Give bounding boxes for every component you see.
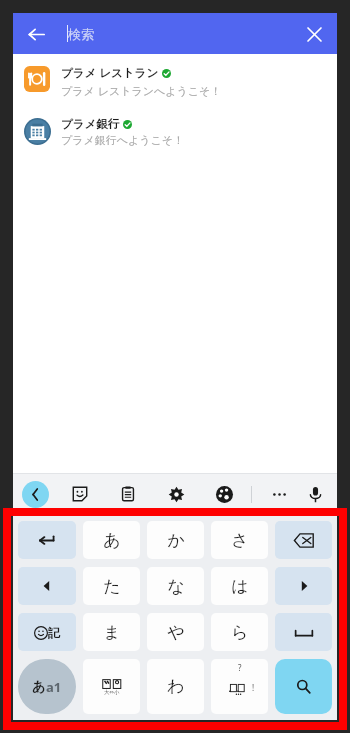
button[interactable]: Search [275,659,332,714]
button[interactable]: Close [298,18,330,50]
button[interactable]: わ [147,659,204,714]
button[interactable]: More options [266,481,292,507]
staticText: わ [167,676,185,697]
button[interactable]: Space [275,613,332,651]
staticText: や [167,622,185,643]
staticText: ら [231,622,249,643]
staticText: あ [103,530,121,551]
staticText: ! [252,682,255,693]
button[interactable]: さ [211,521,268,559]
staticText: a1 [46,678,62,696]
button[interactable]: ? [211,659,268,714]
button[interactable]: 大⇔小 [83,659,140,714]
staticText: 大⇔小 [104,689,120,696]
button[interactable]: Back [19,17,53,51]
staticText: プラメ レストラン [61,65,159,81]
staticText: 記 [48,625,60,640]
staticText: は [231,576,249,597]
button[interactable]: あ [18,659,76,714]
staticText: さ [231,530,249,551]
button[interactable]: は [211,567,268,605]
staticText: か [167,530,185,551]
button[interactable]: Cursor right [275,567,332,605]
staticText: プラメ レストランへようこそ！ [61,83,222,98]
staticText: プラメ銀行 [61,117,120,131]
button[interactable]: か [147,521,204,559]
button[interactable]: Symbols [18,613,76,651]
button[interactable]: ま [83,613,140,651]
button[interactable]: あ [83,521,140,559]
staticText: ま [103,622,121,643]
button[interactable]: Voice input [302,481,328,507]
button[interactable]: や [147,613,204,651]
button[interactable]: Stickers [67,481,93,507]
button[interactable]: Back [22,481,49,508]
button[interactable]: た [83,567,140,605]
staticText: な [167,576,185,597]
button[interactable]: Theme [211,481,237,507]
staticText: プラメ銀行へようこそ！ [61,133,185,147]
button[interactable]: Cursor left [18,567,76,605]
button[interactable]: Backspace [275,521,332,559]
staticText: た [103,576,121,597]
button[interactable]: プラメ レストラン [13,60,337,102]
button[interactable]: Settings [163,481,189,507]
button[interactable]: Clipboard [115,481,141,507]
staticText: ? [238,662,242,673]
button[interactable]: ら [211,613,268,651]
staticText: 検索 [68,26,94,42]
button[interactable]: な [147,567,204,605]
button[interactable] [18,521,76,559]
staticText: あ [32,678,46,694]
button[interactable]: プラメ銀行 [13,112,337,151]
